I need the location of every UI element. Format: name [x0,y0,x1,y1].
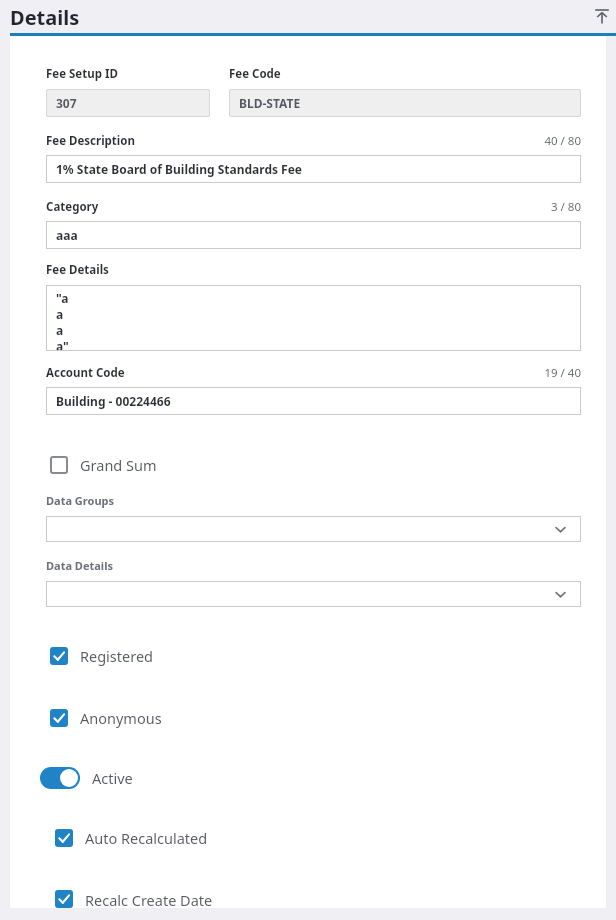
button[interactable]: "a [46,285,581,351]
button[interactable]: Recalc Create Date [55,890,606,908]
staticText: 1% State Board of Building Standards Fee [56,161,303,177]
button[interactable]: 307 [46,89,210,117]
staticText: Fee Description [46,133,135,149]
button[interactable]: Anonymous [50,708,606,728]
staticText: Fee Code [229,66,281,82]
button[interactable]: Grand Sum [50,455,606,475]
staticText: 307 [56,95,77,111]
staticText: a [56,322,64,338]
staticText: Category [46,199,99,215]
button[interactable]: Registered [50,646,606,666]
button[interactable]: Active [40,767,606,789]
button[interactable]: Building - 00224466 [46,387,581,415]
staticText: 19 / 40 [544,365,581,381]
button[interactable]: aaa [46,221,581,249]
staticText: Fee Details [46,262,109,278]
button[interactable]: Open dropdown [46,581,581,607]
staticText: Grand Sum [80,455,157,475]
staticText: Data Details [46,558,113,573]
staticText: 3 / 80 [551,199,581,215]
staticText: a [56,306,64,322]
button[interactable]: BLD-STATE [229,89,581,117]
staticText: Auto Recalculated [85,828,208,848]
staticText: Details [10,4,80,31]
staticText: Recalc Create Date [85,890,213,908]
staticText: Building - 00224466 [56,393,171,409]
staticText: Data Groups [46,493,115,508]
staticText: BLD-STATE [239,95,301,111]
button[interactable]: Open dropdown [46,516,581,542]
staticText: Account Code [46,365,125,381]
staticText: Fee Setup ID [46,66,118,82]
staticText: Active [92,768,133,788]
staticText: a" [56,338,69,351]
button[interactable]: Auto Recalculated [55,828,606,848]
staticText: aaa [56,227,78,243]
staticText: Registered [80,646,154,666]
button[interactable]: Collapse [592,6,612,26]
staticText: Anonymous [80,708,162,728]
staticText: "a [56,290,69,306]
button[interactable]: 1% State Board of Building Standards Fee [46,155,581,183]
staticText: 40 / 80 [544,133,581,149]
